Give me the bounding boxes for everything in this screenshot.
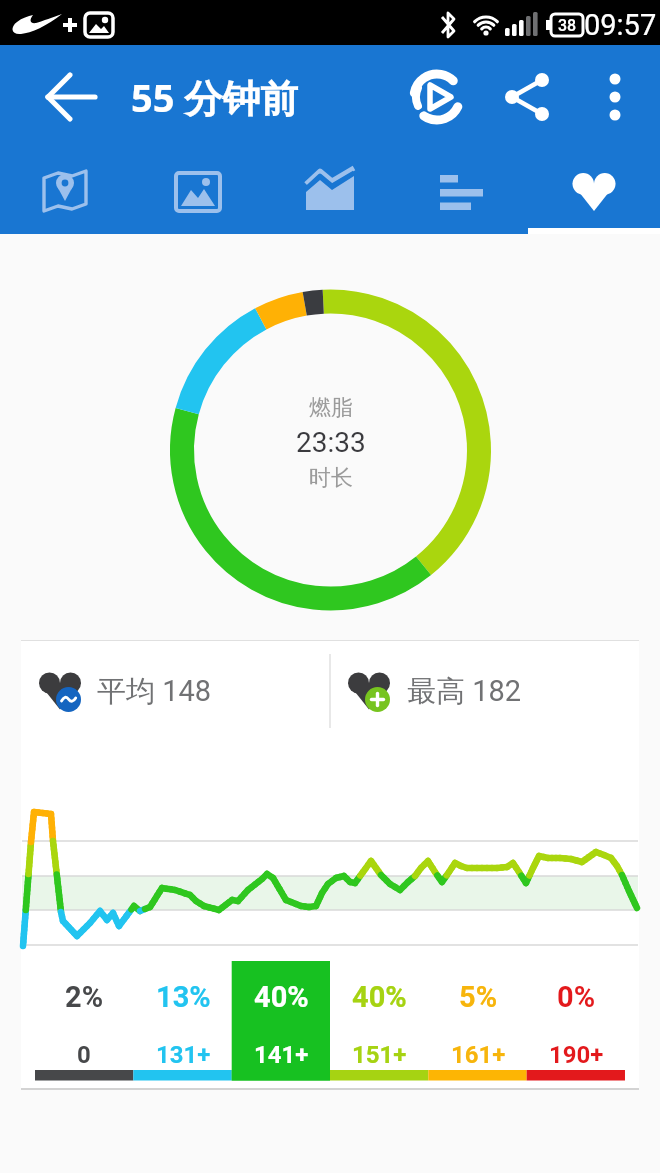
staticText: 5% xyxy=(459,980,498,1014)
staticText: 131+ xyxy=(156,1041,211,1069)
button[interactable] xyxy=(330,640,639,740)
staticText: 23:33 xyxy=(296,426,366,459)
staticText: 38 xyxy=(558,16,577,35)
button[interactable] xyxy=(0,140,132,234)
button[interactable] xyxy=(411,71,463,123)
button[interactable] xyxy=(528,140,660,234)
staticText: 09:57 xyxy=(584,8,657,42)
staticText: 13% xyxy=(156,980,211,1014)
staticText: 最高 182 xyxy=(407,673,522,710)
staticText: 0% xyxy=(557,980,596,1014)
staticText: 161+ xyxy=(451,1041,506,1069)
staticText: 平均 148 xyxy=(97,673,212,710)
button[interactable] xyxy=(589,71,641,123)
button[interactable] xyxy=(132,140,264,234)
staticText: 0 xyxy=(77,1041,91,1069)
staticText: 55 分钟前 xyxy=(131,71,299,123)
button[interactable] xyxy=(264,140,396,234)
button[interactable] xyxy=(396,140,528,234)
staticText: 2% xyxy=(65,980,104,1014)
button[interactable] xyxy=(36,71,88,123)
staticText: 40% xyxy=(352,980,407,1014)
staticText: 时长 xyxy=(309,464,353,492)
button[interactable] xyxy=(501,71,553,123)
staticText: 151+ xyxy=(352,1041,407,1069)
staticText: 40% xyxy=(254,980,309,1014)
staticText: 141+ xyxy=(254,1041,309,1069)
staticText: 190+ xyxy=(549,1041,604,1069)
button[interactable] xyxy=(21,640,330,740)
staticText: 燃脂 xyxy=(309,394,353,422)
